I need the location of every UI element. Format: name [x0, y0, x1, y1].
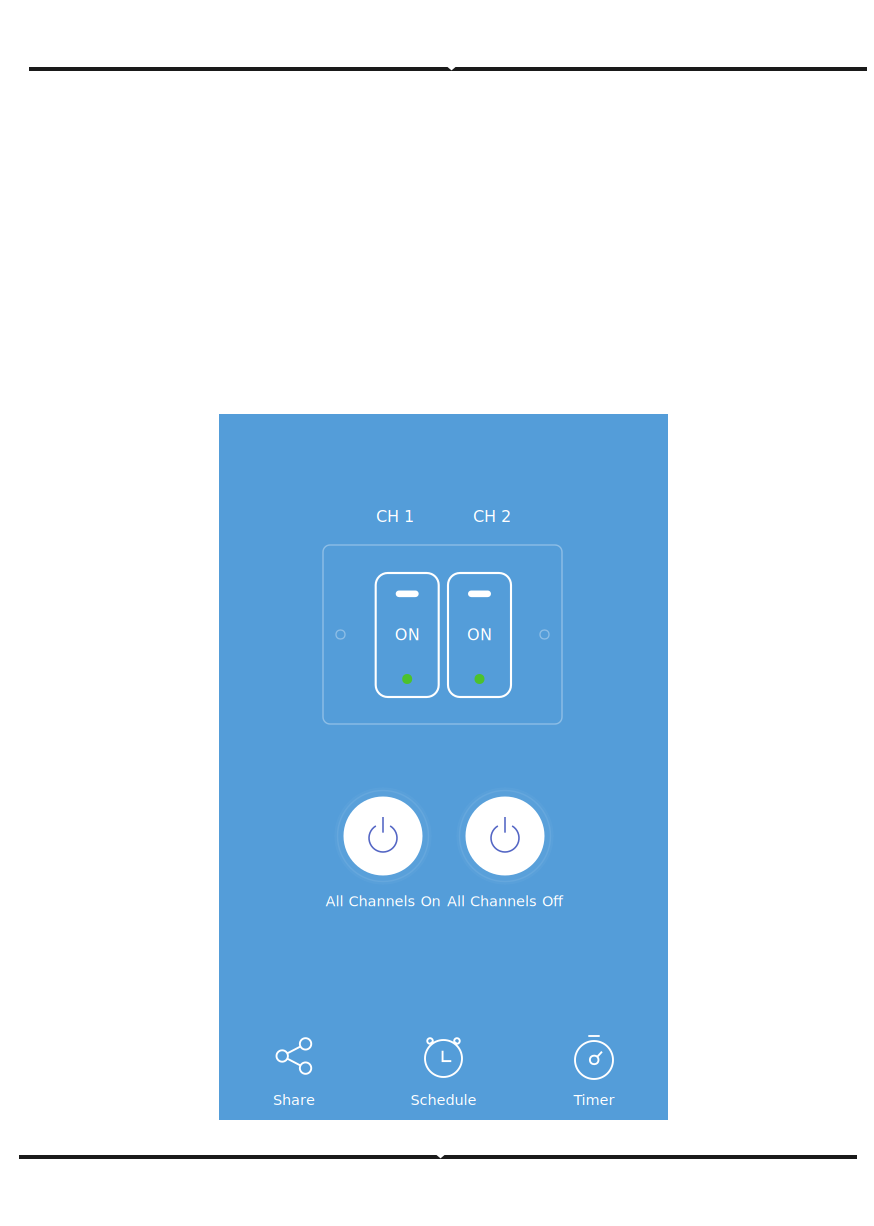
button[interactable]: All Channels On: [308, 788, 458, 924]
button[interactable]: ON: [448, 573, 511, 697]
button[interactable]: All Channels Off: [430, 788, 580, 924]
staticText: All Channels On: [325, 893, 440, 910]
staticText: Timer: [573, 1092, 614, 1108]
button[interactable]: ON: [376, 573, 439, 697]
staticText: CH 2: [473, 507, 511, 526]
button[interactable]: Timer: [519, 1034, 669, 1108]
staticText: All Channels Off: [447, 893, 563, 910]
staticText: Schedule: [410, 1092, 476, 1108]
staticText: Share: [273, 1092, 315, 1108]
button[interactable]: Schedule: [368, 1034, 518, 1108]
staticText: ON: [395, 625, 420, 644]
staticText: ON: [467, 625, 492, 644]
staticText: CH 1: [376, 507, 414, 526]
button[interactable]: Share: [219, 1034, 369, 1108]
